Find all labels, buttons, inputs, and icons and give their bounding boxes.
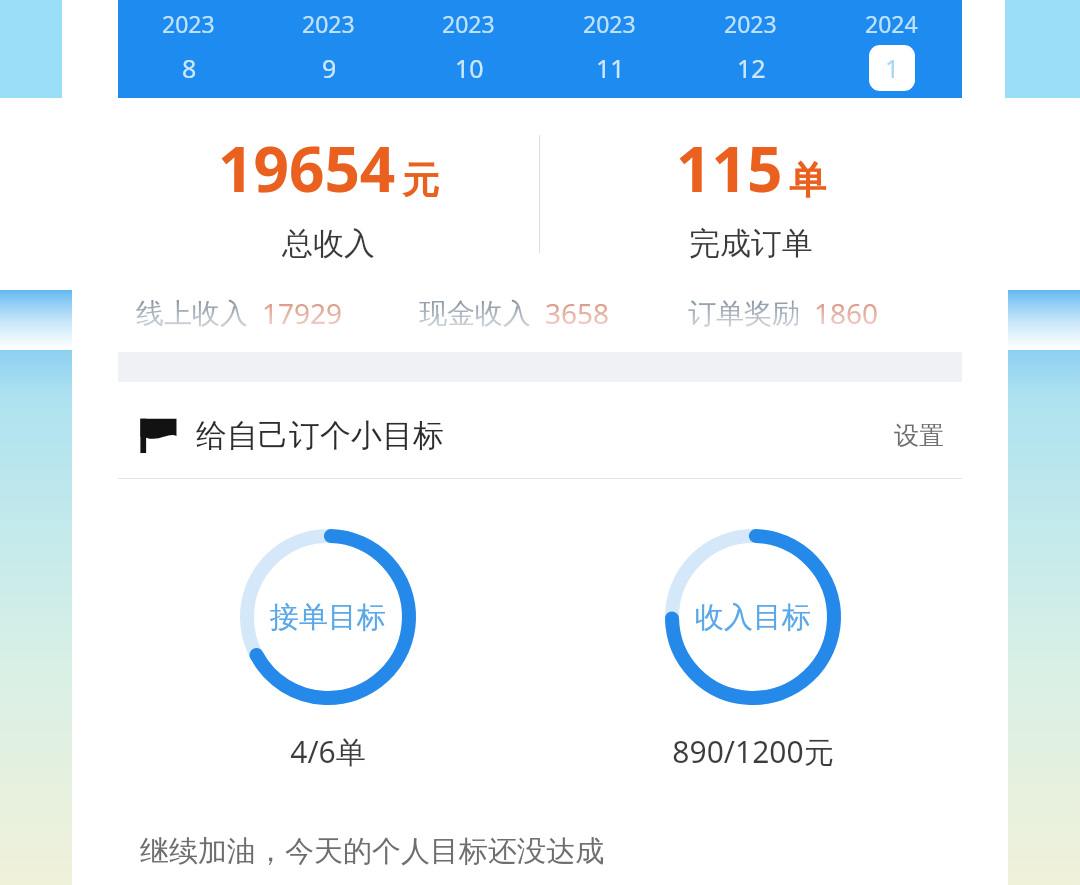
button[interactable]: 19654 (118, 98, 539, 290)
staticText: 4/6单 (188, 731, 468, 772)
staticText: 收入目标 (695, 599, 811, 636)
button[interactable]: 2023 (118, 0, 258, 98)
staticText: 10 (455, 51, 484, 85)
staticText: 完成订单 (689, 224, 813, 263)
staticText: 12 (737, 51, 766, 85)
staticText: 设置 (894, 420, 944, 451)
staticText: 2023 (442, 8, 495, 39)
staticText: 线上收入 (136, 296, 248, 331)
staticText: 17929 (262, 294, 343, 332)
staticText: 2023 (583, 8, 636, 39)
button[interactable]: 接单目标 (240, 529, 416, 705)
button[interactable]: 收入目标 (665, 529, 841, 705)
button[interactable]: 115 (540, 98, 962, 290)
staticText: 2023 (302, 8, 355, 39)
staticText: 1 (885, 51, 900, 85)
staticText: 3658 (545, 294, 610, 332)
staticText: 订单奖励 (688, 296, 800, 331)
staticText: 继续加油，今天的个人目标还没达成 (140, 833, 604, 870)
staticText: 现金收入 (419, 296, 531, 331)
staticText: 单 (789, 157, 826, 204)
staticText: 11 (596, 51, 625, 85)
staticText: 9 (322, 51, 337, 85)
button[interactable]: 2023 (398, 0, 539, 98)
button[interactable]: 设置 (884, 412, 954, 459)
staticText: 元 (402, 157, 439, 204)
staticText: 115 (676, 126, 783, 210)
staticText: 给自己订个小目标 (196, 416, 444, 455)
staticText: 1860 (814, 294, 879, 332)
button[interactable]: 2023 (258, 0, 398, 98)
staticText: 19654 (218, 126, 396, 210)
staticText: 8 (182, 51, 197, 85)
staticText: 2023 (724, 8, 777, 39)
staticText: 接单目标 (270, 599, 386, 636)
other: 目标 (136, 413, 180, 457)
staticText: 总收入 (282, 224, 375, 263)
button[interactable]: 2023 (539, 0, 680, 98)
button[interactable]: 2023 (680, 0, 821, 98)
staticText: 890/1200元 (613, 731, 893, 772)
staticText: 2023 (162, 8, 215, 39)
staticText: 2024 (865, 8, 918, 39)
button[interactable]: 2024 (821, 0, 962, 98)
